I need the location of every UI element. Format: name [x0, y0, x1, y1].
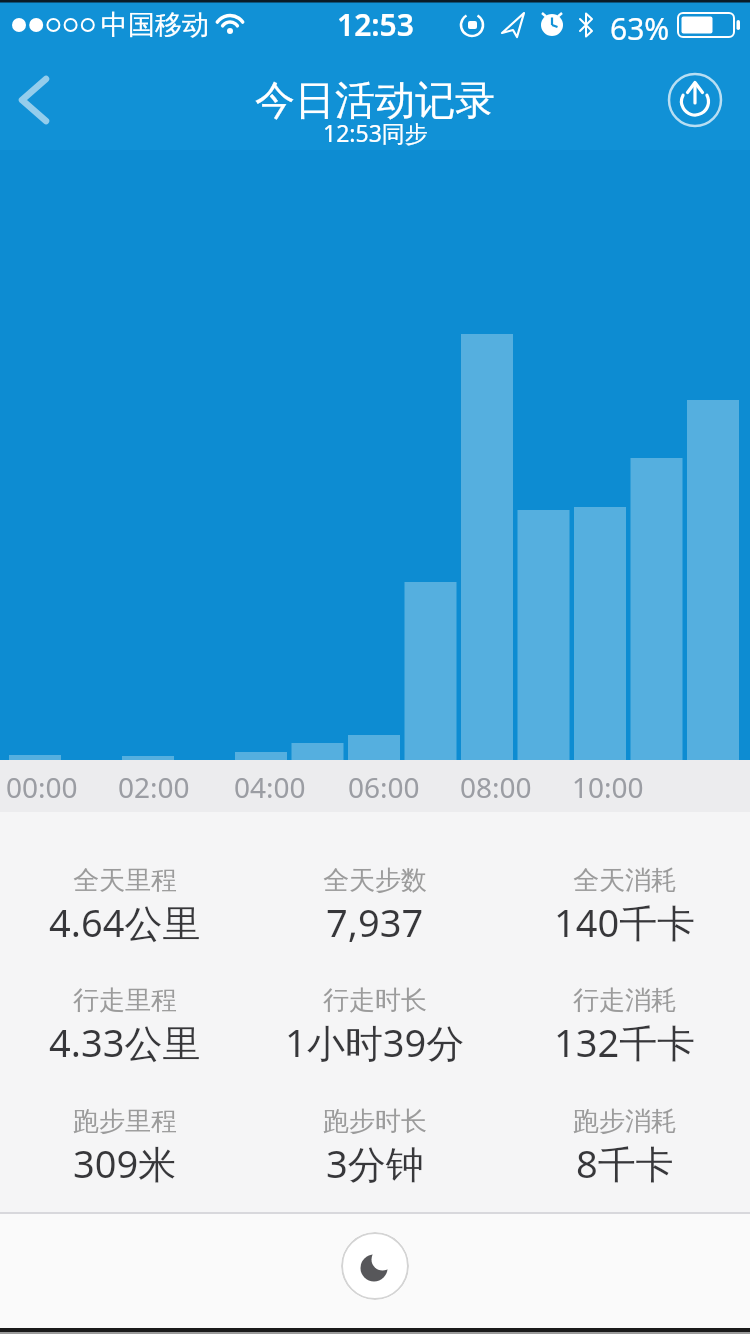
staticText: 140千卡: [554, 896, 696, 948]
staticText: 12:53: [337, 4, 414, 45]
staticText: 7,937: [326, 896, 424, 948]
staticText: 行走里程: [73, 984, 177, 1017]
staticText: 02:00: [118, 768, 190, 806]
staticText: 今日活动记录: [255, 75, 495, 125]
staticText: 10:00: [572, 768, 644, 806]
staticText: 全天消耗: [573, 864, 677, 897]
staticText: 12:53同步: [323, 117, 428, 148]
staticText: 132千卡: [554, 1016, 696, 1068]
staticText: 63%: [610, 8, 670, 42]
staticText: 跑步消耗: [573, 1105, 677, 1138]
staticText: 4.64公里: [49, 896, 201, 948]
staticText: 全天里程: [73, 864, 177, 897]
staticText: 跑步时长: [323, 1105, 427, 1138]
button[interactable]: [0, 62, 80, 138]
staticText: 全天步数: [323, 864, 427, 897]
staticText: 309米: [73, 1137, 177, 1189]
staticText: 04:00: [234, 768, 306, 806]
staticText: 3分钟: [326, 1137, 424, 1189]
staticText: 00:00: [6, 768, 78, 806]
staticText: 1小时39分: [285, 1016, 465, 1068]
staticText: 行走时长: [323, 984, 427, 1017]
staticText: 4.33公里: [49, 1016, 201, 1068]
staticText: 跑步里程: [73, 1105, 177, 1138]
staticText: 行走消耗: [573, 984, 677, 1017]
staticText: 08:00: [460, 768, 532, 806]
button[interactable]: [341, 1232, 409, 1300]
staticText: 8千卡: [576, 1137, 674, 1189]
staticText: 中国移动: [101, 8, 209, 42]
button[interactable]: [665, 70, 725, 130]
staticText: 06:00: [348, 768, 420, 806]
